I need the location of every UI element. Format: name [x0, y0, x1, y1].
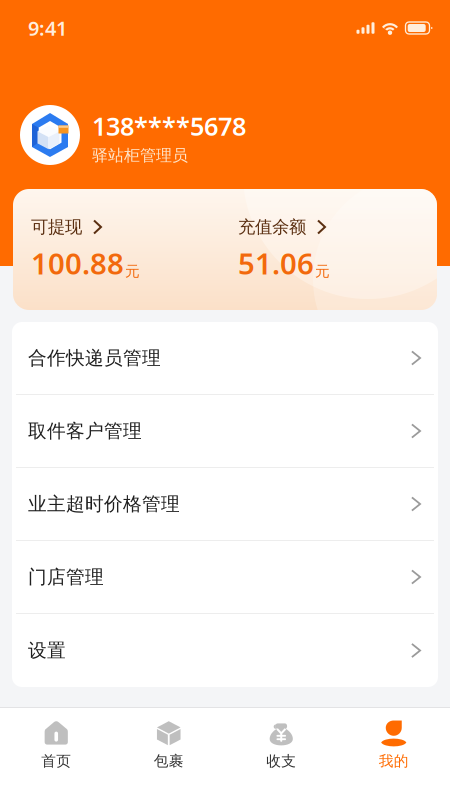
staticText: 51.06 — [238, 243, 314, 282]
button[interactable]: Profile photo — [20, 105, 80, 165]
staticText: 合作快递员管理 — [28, 346, 161, 369]
staticText: 设置 — [28, 639, 66, 662]
staticText: 收支 — [266, 752, 296, 770]
staticText: 取件客户管理 — [28, 419, 142, 442]
staticText: 门店管理 — [28, 565, 104, 588]
button[interactable]: 取件客户管理 — [12, 395, 438, 468]
button[interactable]: 充值余额 — [238, 216, 330, 280]
staticText: 首页 — [41, 752, 71, 770]
staticText: 业主超时价格管理 — [28, 492, 180, 515]
staticText: 充值余额 — [238, 216, 306, 238]
button[interactable]: 设置 — [12, 614, 438, 687]
button[interactable]: 首页 — [0, 708, 112, 800]
button[interactable]: 合作快递员管理 — [12, 322, 438, 395]
staticText: 元 — [315, 262, 330, 280]
button[interactable]: 可提现 — [31, 216, 140, 280]
staticText: 100.88 — [31, 243, 124, 282]
button[interactable]: 我的 — [337, 708, 450, 800]
button[interactable]: 门店管理 — [12, 541, 438, 614]
staticText: 可提现 — [31, 216, 82, 238]
staticText: 元 — [125, 262, 140, 280]
staticText: 我的 — [379, 752, 409, 770]
staticText: 138****5678 — [92, 109, 246, 143]
staticText: 驿站柜管理员 — [92, 146, 188, 165]
button[interactable]: 包裹 — [112, 708, 225, 800]
staticText: 9:41 — [28, 15, 67, 41]
button[interactable]: 收支 — [225, 708, 337, 800]
button[interactable]: 业主超时价格管理 — [12, 468, 438, 541]
staticText: 包裹 — [154, 752, 184, 770]
